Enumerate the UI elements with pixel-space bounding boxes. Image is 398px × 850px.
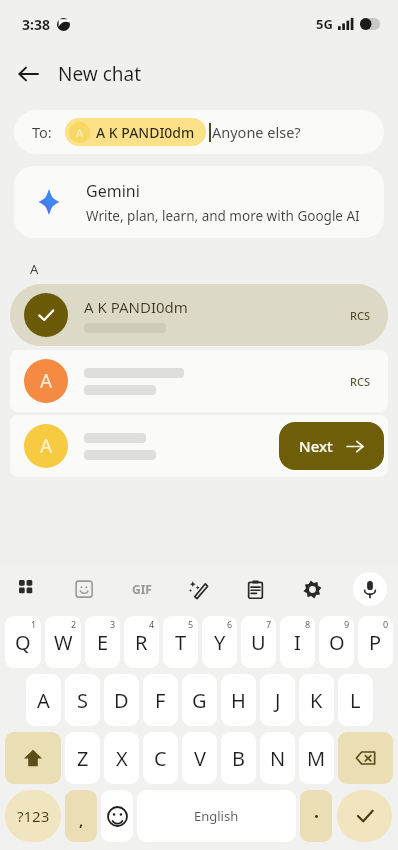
- staticText: Write, plan, learn, and more with Google…: [86, 207, 360, 225]
- staticText: V: [194, 745, 206, 772]
- staticText: E: [97, 629, 109, 656]
- button[interactable]: H: [221, 674, 256, 726]
- button[interactable]: Gemini: [14, 166, 384, 238]
- staticText: 2: [71, 618, 77, 630]
- staticText: T: [175, 629, 187, 656]
- button[interactable]: Z: [65, 732, 100, 784]
- staticText: Next: [299, 436, 333, 456]
- button[interactable]: P: [358, 616, 393, 668]
- staticText: 6: [227, 618, 233, 630]
- button[interactable]: G: [182, 674, 217, 726]
- staticText: A: [40, 368, 53, 394]
- staticText: GIF: [132, 581, 152, 597]
- button[interactable]: Y: [202, 616, 237, 668]
- staticText: A: [30, 260, 39, 278]
- staticText: I: [294, 629, 301, 656]
- button[interactable]: English: [137, 790, 296, 842]
- button[interactable]: Apps: [0, 566, 56, 612]
- staticText: RCS: [350, 308, 370, 323]
- staticText: A: [76, 125, 84, 140]
- button[interactable]: V: [182, 732, 217, 784]
- staticText: Y: [214, 629, 226, 656]
- button[interactable]: J: [260, 674, 295, 726]
- staticText: 9: [344, 618, 350, 630]
- button[interactable]: GIF: [113, 566, 170, 612]
- button[interactable]: N: [260, 732, 295, 784]
- staticText: Q: [15, 629, 31, 656]
- button[interactable]: F: [143, 674, 178, 726]
- button[interactable]: Backspace: [338, 732, 393, 784]
- staticText: X: [116, 745, 128, 772]
- staticText: M: [307, 745, 326, 772]
- staticText: D: [114, 687, 129, 714]
- button[interactable]: I: [280, 616, 315, 668]
- staticText: S: [77, 687, 88, 714]
- staticText: 7: [266, 618, 272, 630]
- staticText: A K PANDI0dm: [96, 123, 195, 142]
- staticText: N: [270, 745, 286, 772]
- staticText: Z: [77, 745, 89, 772]
- staticText: K: [310, 687, 323, 714]
- button[interactable]: Next: [279, 422, 384, 470]
- staticText: A: [40, 433, 53, 459]
- button[interactable]: X: [104, 732, 139, 784]
- button[interactable]: [300, 790, 332, 842]
- staticText: ,: [79, 810, 84, 830]
- staticText: Anyone else?: [212, 122, 301, 142]
- staticText: 8: [305, 618, 311, 630]
- staticText: H: [231, 687, 246, 714]
- button[interactable]: M: [299, 732, 334, 784]
- button[interactable]: W: [45, 616, 81, 668]
- staticText: 5: [188, 618, 194, 630]
- staticText: O: [329, 629, 345, 656]
- button[interactable]: Voice input: [353, 572, 387, 606]
- button[interactable]: Clipboard: [227, 566, 284, 612]
- staticText: English: [194, 807, 239, 825]
- staticText: A: [37, 687, 50, 714]
- button[interactable]: S: [65, 674, 100, 726]
- staticText: To:: [32, 122, 52, 142]
- button[interactable]: T: [163, 616, 198, 668]
- staticText: P: [369, 629, 382, 656]
- button[interactable]: A: [10, 415, 388, 477]
- staticText: 4: [149, 618, 155, 630]
- staticText: R: [135, 629, 148, 656]
- staticText: G: [192, 687, 207, 714]
- staticText: Gemini: [86, 180, 140, 202]
- button[interactable]: K: [299, 674, 334, 726]
- staticText: 0: [383, 618, 389, 630]
- button[interactable]: Magic compose: [170, 566, 227, 612]
- button[interactable]: L: [338, 674, 373, 726]
- button[interactable]: B: [221, 732, 256, 784]
- button[interactable]: Back: [8, 54, 48, 94]
- button[interactable]: ,: [65, 790, 97, 842]
- staticText: 1: [31, 618, 37, 630]
- button[interactable]: A K PANDI0dm: [10, 284, 388, 346]
- button[interactable]: Shift: [5, 732, 61, 784]
- button[interactable]: U: [241, 616, 276, 668]
- button[interactable]: Enter: [337, 790, 392, 842]
- button[interactable]: R: [124, 616, 159, 668]
- staticText: A K PANDI0dm: [84, 297, 188, 317]
- staticText: B: [232, 745, 245, 772]
- button[interactable]: Q: [5, 616, 41, 668]
- button[interactable]: ?123: [5, 790, 61, 842]
- button[interactable]: A: [26, 674, 61, 726]
- staticText: 3: [110, 618, 116, 630]
- staticText: 5G: [316, 15, 333, 33]
- staticText: New chat: [58, 61, 142, 87]
- staticText: W: [54, 629, 73, 656]
- button[interactable]: Settings: [284, 566, 341, 612]
- button[interactable]: C: [143, 732, 178, 784]
- button[interactable]: A: [10, 350, 388, 412]
- button[interactable]: O: [319, 616, 354, 668]
- staticText: L: [350, 687, 361, 714]
- staticText: 3:38: [22, 15, 50, 34]
- staticText: ?123: [17, 806, 50, 826]
- staticText: U: [251, 629, 266, 656]
- button[interactable]: Emoji: [101, 790, 133, 842]
- button[interactable]: D: [104, 674, 139, 726]
- button[interactable]: E: [85, 616, 120, 668]
- button[interactable]: To:: [14, 110, 384, 154]
- button[interactable]: Stickers: [56, 566, 113, 612]
